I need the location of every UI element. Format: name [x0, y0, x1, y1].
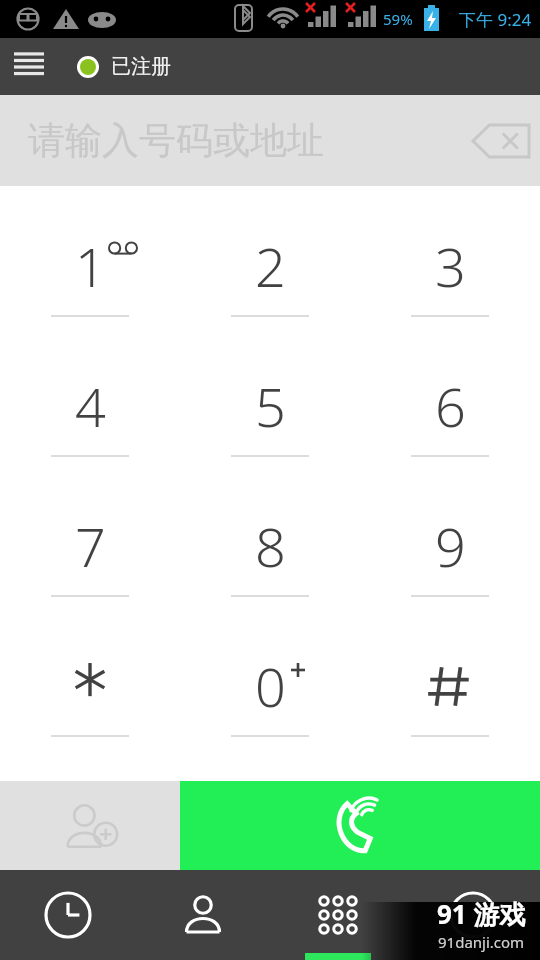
- staticText: 4: [75, 369, 106, 443]
- staticText: 1: [75, 229, 106, 303]
- button[interactable]: 9: [360, 471, 540, 611]
- button[interactable]: 已注册: [57, 38, 187, 95]
- staticText: 6: [435, 369, 466, 443]
- staticText: 59%: [383, 9, 413, 29]
- button[interactable]: 1: [0, 192, 180, 331]
- button[interactable]: 请输入号码或地址: [0, 95, 540, 186]
- staticText: 8: [255, 509, 286, 583]
- staticText: 2: [255, 229, 286, 303]
- button[interactable]: Favorites: [405, 870, 540, 960]
- staticText: 91 游戏: [437, 896, 526, 932]
- staticText: 0: [255, 649, 286, 723]
- button[interactable]: 5: [180, 331, 360, 471]
- button[interactable]: 8: [180, 471, 360, 611]
- staticText: 已注册: [111, 54, 171, 79]
- button[interactable]: Backspace: [462, 95, 540, 186]
- button[interactable]: 3: [360, 192, 540, 331]
- button[interactable]: Recents: [0, 870, 135, 960]
- button[interactable]: Add contact: [0, 781, 180, 870]
- button[interactable]: Call: [180, 781, 540, 870]
- staticText: 9: [435, 509, 466, 583]
- staticText: 91danji.com: [438, 932, 525, 952]
- staticText: 3: [435, 229, 466, 303]
- staticText: 请输入号码或地址: [28, 117, 324, 164]
- button[interactable]: 2: [180, 192, 360, 331]
- button[interactable]: 4: [0, 331, 180, 471]
- button[interactable]: Menu: [0, 38, 57, 95]
- button[interactable]: Dialpad: [270, 870, 405, 960]
- staticText: 5: [255, 369, 286, 443]
- staticText: 下午 9:24: [459, 8, 532, 31]
- button[interactable]: 6: [360, 331, 540, 471]
- button[interactable]: 7: [0, 471, 180, 611]
- button[interactable]: [360, 611, 540, 751]
- staticText: 7: [75, 509, 106, 583]
- button[interactable]: 0: [180, 611, 360, 751]
- button[interactable]: [0, 611, 180, 751]
- button[interactable]: Contacts: [135, 870, 270, 960]
